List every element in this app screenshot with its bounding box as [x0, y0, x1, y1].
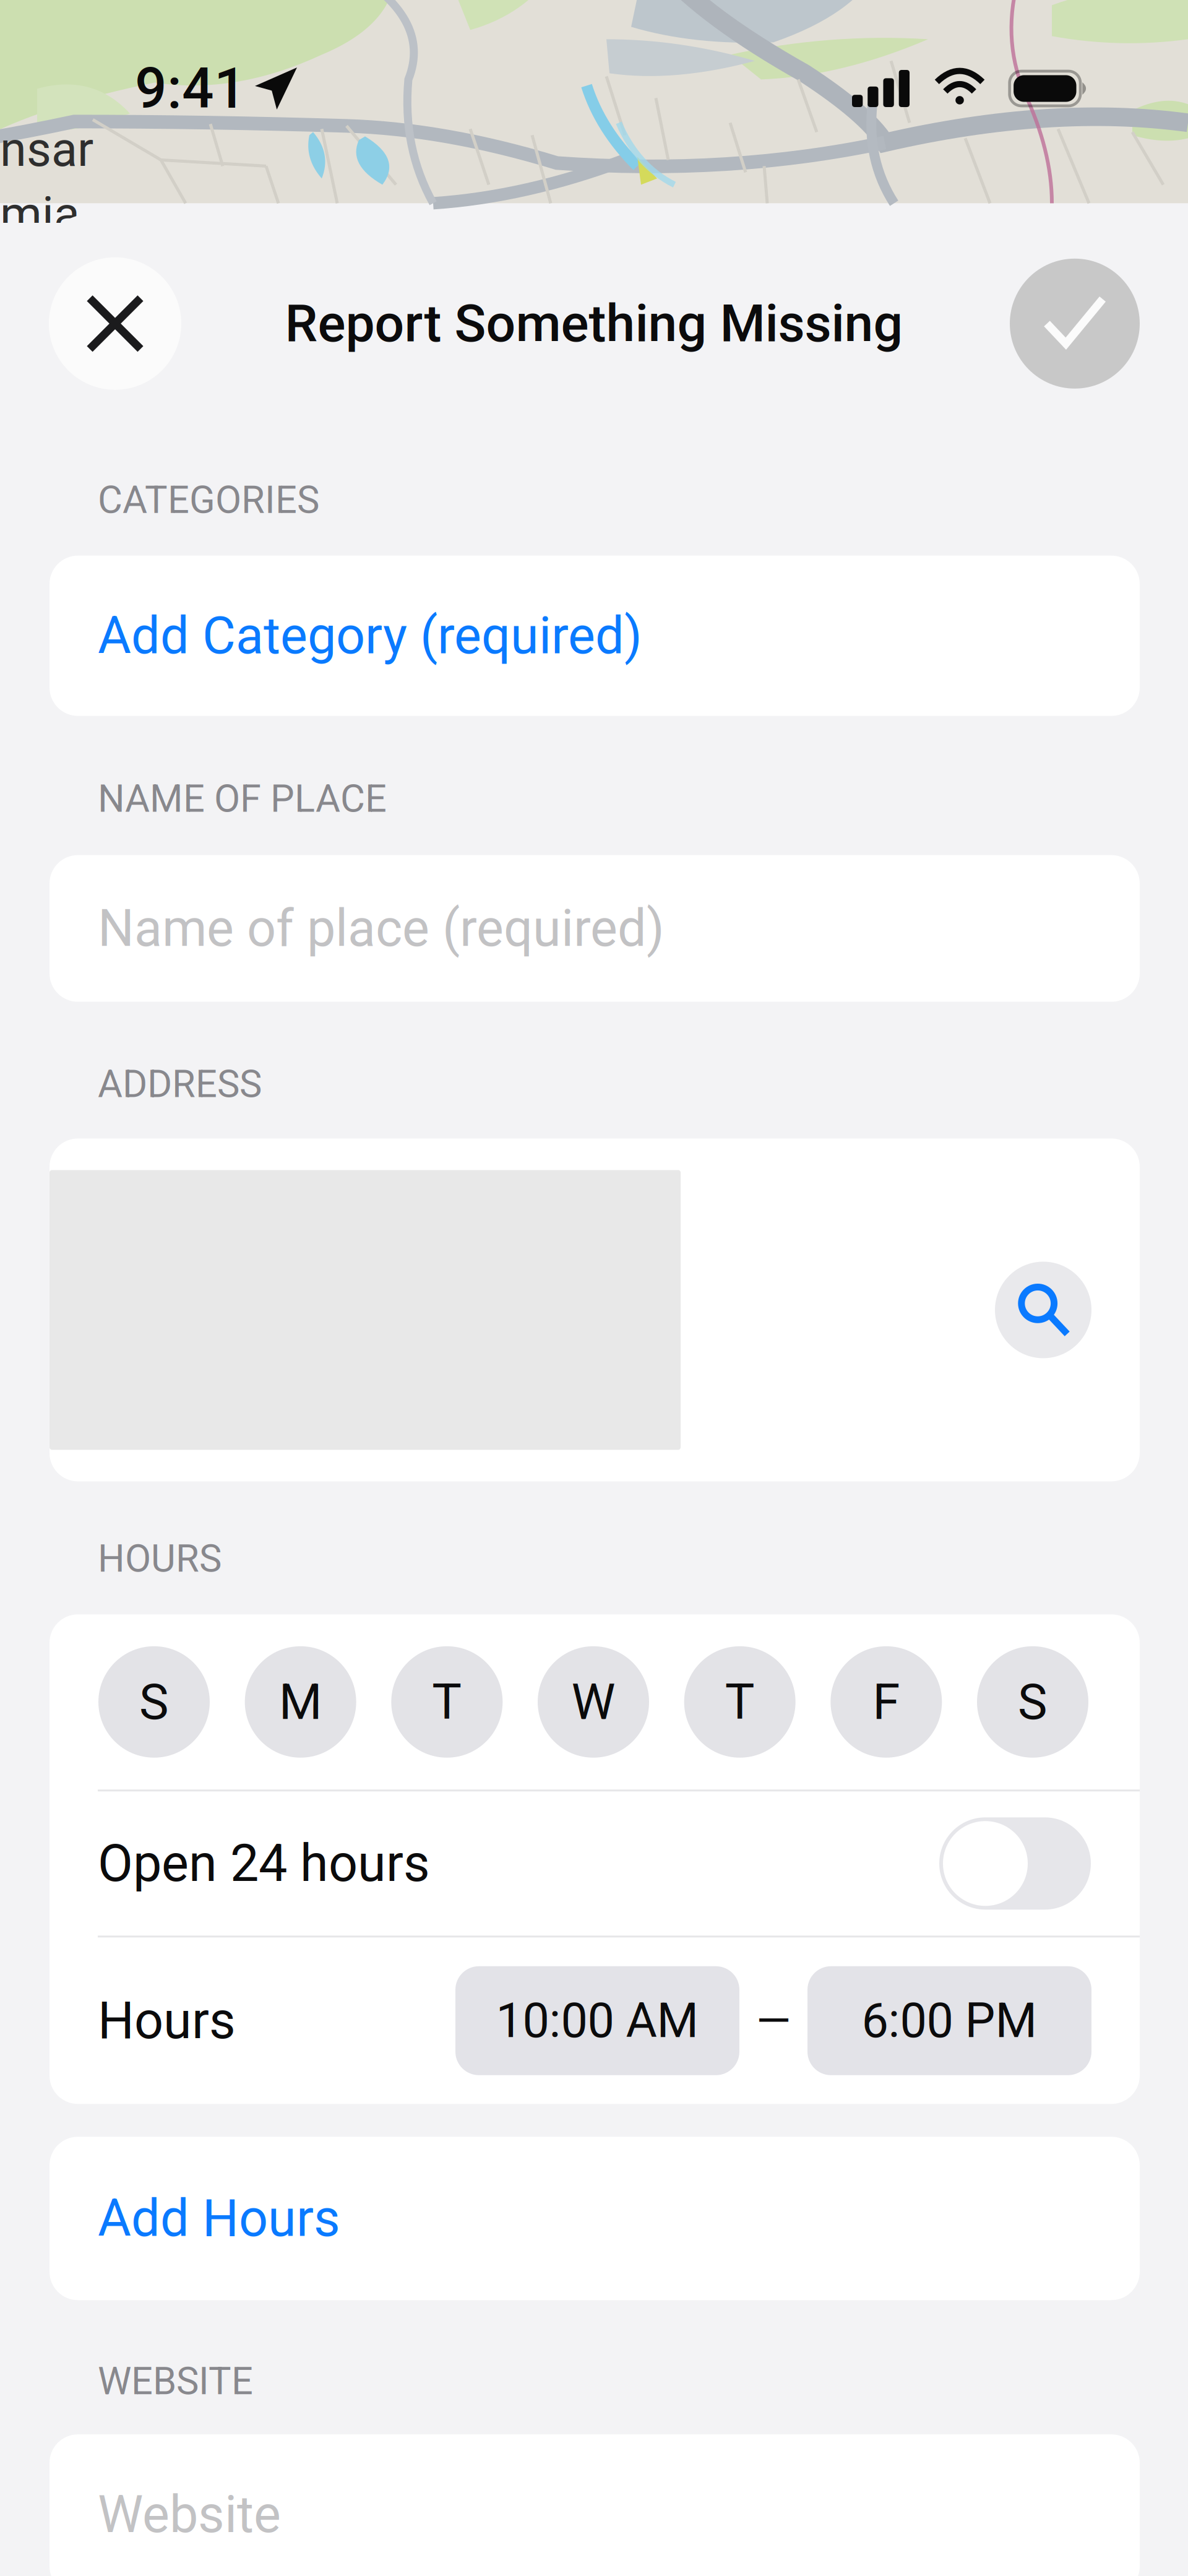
staticText: — — [756, 1995, 791, 2047]
button[interactable]: Add Category (required) — [49, 556, 1140, 716]
staticText: WEBSITE — [98, 2359, 253, 2403]
staticText: HOURS — [98, 1536, 222, 1581]
staticText: S — [1018, 1673, 1048, 1731]
staticText: CATEGORIES — [98, 478, 319, 522]
button[interactable]: Name of place (required) — [49, 855, 1140, 1002]
staticText: Report Something Missing — [285, 293, 903, 354]
button[interactable]: T — [684, 1646, 796, 1758]
staticText: nsar — [0, 122, 93, 178]
staticText: Website — [98, 2485, 281, 2544]
staticText: F — [873, 1673, 900, 1731]
button[interactable]: S — [98, 1646, 210, 1758]
staticText: ADDRESS — [98, 1062, 262, 1106]
staticText: mia — [0, 186, 80, 242]
button[interactable]: 10:00 AM — [455, 1966, 739, 2075]
button[interactable]: F — [831, 1646, 942, 1758]
button[interactable]: Website — [49, 2434, 1140, 2576]
staticText: 10:00 AM — [496, 1993, 699, 2049]
button[interactable]: Close — [49, 257, 181, 390]
button[interactable]: S — [977, 1646, 1088, 1758]
button[interactable]: W — [538, 1646, 649, 1758]
staticText: Add Hours — [98, 2188, 340, 2248]
staticText: T — [725, 1673, 755, 1731]
button[interactable]: M — [245, 1646, 356, 1758]
button[interactable]: T — [391, 1646, 503, 1758]
staticText: W — [571, 1673, 615, 1731]
button[interactable]: Submit report — [1010, 259, 1140, 389]
staticText: 6:00 PM — [862, 1993, 1037, 2049]
button[interactable]: Search for address — [995, 1262, 1091, 1358]
button[interactable]: Open 24 hours — [939, 1817, 1091, 1910]
staticText: T — [432, 1673, 462, 1731]
staticText: S — [139, 1673, 169, 1731]
staticText: M — [279, 1673, 322, 1731]
staticText: NAME OF PLACE — [98, 777, 387, 821]
button[interactable]: 6:00 PM — [807, 1966, 1091, 2075]
button[interactable]: Add Hours — [49, 2137, 1140, 2300]
staticText: 9:41 — [135, 56, 246, 121]
staticText: Hours — [98, 1991, 236, 2051]
staticText: Open 24 hours — [98, 1834, 430, 1894]
staticText: Name of place (required) — [98, 898, 665, 958]
staticText: Add Category (required) — [98, 606, 642, 666]
